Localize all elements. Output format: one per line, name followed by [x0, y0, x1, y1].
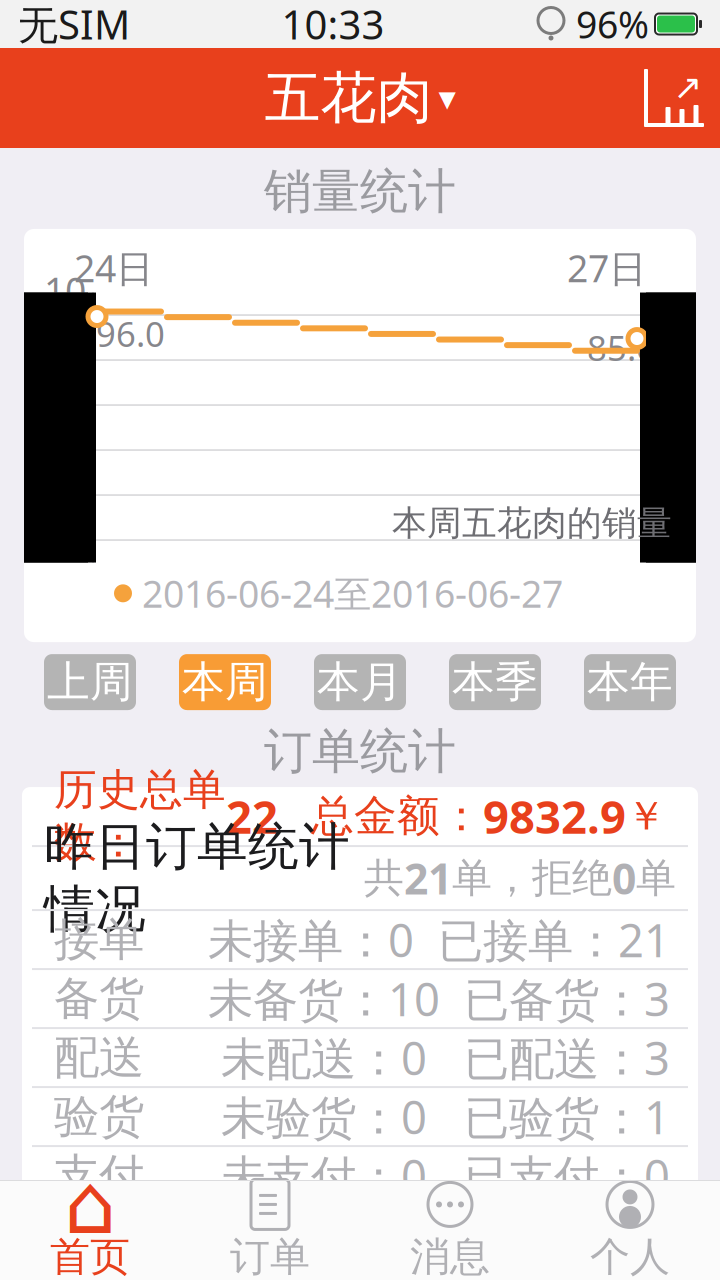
staticText: 本年: [587, 656, 673, 708]
staticText: 验货: [54, 1089, 144, 1144]
staticText: 本周: [182, 656, 268, 708]
staticText: 27日: [567, 243, 646, 293]
button[interactable]: 本年: [584, 654, 676, 710]
staticText: 9832.9: [483, 786, 626, 846]
staticText: 销量统计: [264, 162, 456, 221]
staticText: 备货: [54, 971, 144, 1026]
button[interactable]: 备货: [22, 970, 698, 1027]
staticText: 未配送：0: [221, 1027, 427, 1088]
staticText: 总金额：: [311, 790, 483, 842]
button[interactable]: 统计图表: [630, 53, 720, 143]
staticText: 已接单：21: [438, 909, 670, 970]
button[interactable]: 消息: [360, 1180, 540, 1280]
staticText: 支付: [54, 1148, 144, 1203]
staticText: 已备货：3: [464, 968, 670, 1029]
button[interactable]: 个人: [540, 1180, 720, 1280]
staticText: 未接单：0: [208, 909, 414, 970]
staticText: 0: [612, 850, 636, 906]
staticText: 订单: [230, 1232, 310, 1280]
staticText: 已配送：3: [464, 1027, 670, 1088]
staticText: 24日: [74, 243, 153, 293]
staticText: 本季: [452, 656, 538, 708]
button[interactable]: 配送: [22, 1029, 698, 1086]
staticText: 未备货：10: [208, 968, 440, 1029]
button[interactable]: 本周: [179, 654, 271, 710]
staticText: ￥: [626, 791, 666, 841]
button[interactable]: 本月: [314, 654, 406, 710]
staticText: 评价: [54, 1207, 144, 1262]
staticText: ▾: [438, 78, 455, 118]
staticText: 消息: [410, 1232, 490, 1280]
staticText: 22: [226, 786, 278, 846]
staticText: 未评价：0: [221, 1204, 427, 1265]
staticText: 接单: [54, 912, 144, 967]
button[interactable]: ⌂: [0, 1180, 180, 1280]
staticText: 已评价：0: [464, 1204, 670, 1265]
staticText: 96.0: [96, 310, 165, 356]
button[interactable]: 订单: [180, 1180, 360, 1280]
staticText: 2016-06-24至2016-06-27: [142, 568, 563, 618]
button[interactable]: 本季: [449, 654, 541, 710]
staticText: 0: [65, 515, 86, 565]
staticText: 个人: [590, 1232, 670, 1280]
staticText: 历史总单数：: [54, 764, 226, 868]
button[interactable]: 上周: [44, 654, 136, 710]
staticText: 已支付：0: [464, 1145, 670, 1206]
staticText: ⌂: [64, 1157, 116, 1251]
staticText: ↗: [673, 67, 702, 107]
staticText: 上周: [47, 656, 133, 708]
staticText: 本月: [317, 656, 403, 708]
staticText: 100: [44, 265, 86, 365]
button[interactable]: 验货: [22, 1088, 698, 1145]
staticText: 订单统计: [264, 722, 456, 781]
staticText: 本周五花肉的销量: [392, 502, 672, 545]
staticText: 五花肉: [264, 64, 432, 132]
staticText: 单: [636, 853, 676, 903]
staticText: 已验货：1: [464, 1086, 670, 1147]
staticText: 96%: [576, 0, 649, 49]
staticText: 单，拒绝: [452, 853, 612, 903]
button[interactable]: 支付: [22, 1147, 698, 1204]
staticText: 昨日订单统计情况: [44, 816, 350, 940]
staticText: 85.0: [587, 324, 656, 370]
staticText: 配送: [54, 1030, 144, 1085]
staticText: 未支付：0: [221, 1145, 427, 1206]
staticText: 未验货：0: [221, 1086, 427, 1147]
button[interactable]: 五花肉: [250, 54, 469, 142]
staticText: 共: [364, 853, 404, 903]
button[interactable]: 评价: [22, 1206, 698, 1263]
button[interactable]: 接单: [22, 911, 698, 968]
staticText: 首页: [50, 1232, 130, 1280]
staticText: 无SIM: [18, 0, 130, 50]
staticText: 21: [404, 850, 452, 906]
staticText: 10:33: [281, 0, 384, 50]
